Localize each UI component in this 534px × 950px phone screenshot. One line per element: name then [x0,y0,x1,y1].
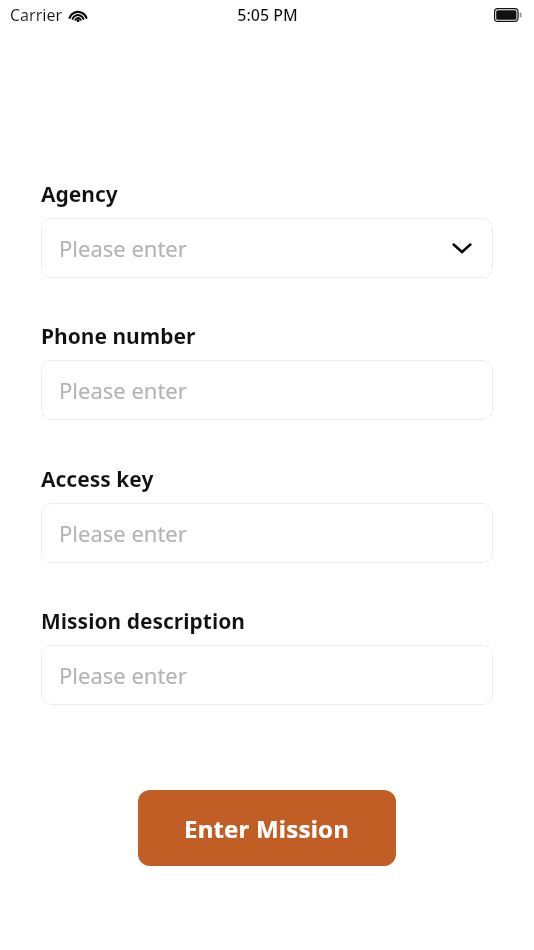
button[interactable]: Please enter [41,645,493,705]
staticText: Please enter [59,518,187,548]
button[interactable]: Enter Mission [138,790,396,866]
staticText: Carrier [10,4,63,26]
staticText: Enter Mission [184,812,350,845]
staticText: Please enter [59,660,187,690]
staticText: Access key [41,465,154,494]
button[interactable]: Please enter [41,218,493,278]
staticText: Please enter [59,233,187,263]
staticText: Please enter [59,375,187,405]
staticText: Mission description [41,607,245,636]
button[interactable]: Please enter [41,360,493,420]
staticText: Agency [41,180,118,209]
button[interactable]: Open agency list [449,235,475,261]
staticText: 5:05 PM [237,4,298,26]
button[interactable]: Please enter [41,503,493,563]
staticText: Phone number [41,322,196,351]
